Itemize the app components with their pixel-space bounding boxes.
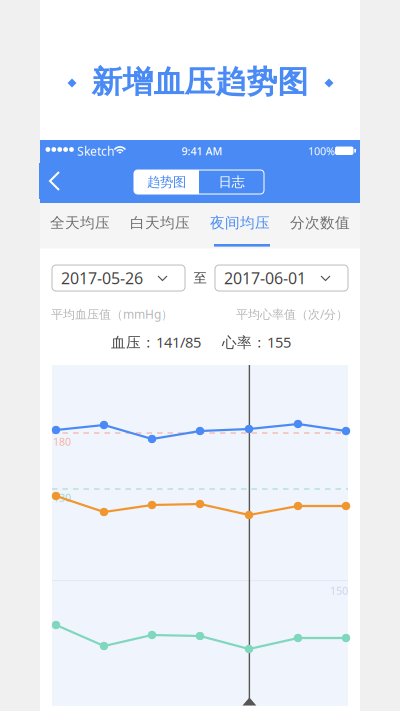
staticText: 180 xyxy=(53,434,71,449)
button[interactable]: 日志 xyxy=(199,170,264,194)
staticText: 平均心率值（次/分） xyxy=(236,306,348,322)
staticText: 新增血压趋势图 xyxy=(91,63,308,101)
staticText: 100% xyxy=(308,144,335,158)
button[interactable]: 2017-06-01 xyxy=(215,265,348,291)
staticText: 全天均压 xyxy=(50,214,110,232)
staticText: 白天均压 xyxy=(130,214,190,232)
staticText: 日志 xyxy=(218,174,244,190)
staticText: 9:41 AM xyxy=(181,144,222,158)
button[interactable]: 夜间均压 xyxy=(200,203,280,248)
staticText: Sketch xyxy=(77,143,114,159)
staticText: 血压：141/85 xyxy=(111,332,201,352)
staticText: 趋势图 xyxy=(147,174,186,190)
staticText: 130 xyxy=(53,490,71,505)
button[interactable]: 分次数值 xyxy=(280,203,360,248)
staticText: 分次数值 xyxy=(290,214,350,232)
staticText: 2017-06-01 xyxy=(224,267,306,289)
staticText: 夜间均压 xyxy=(210,214,270,232)
button[interactable]: 2017-05-26 xyxy=(52,265,185,291)
button[interactable]: 全天均压 xyxy=(40,203,120,248)
button[interactable]: 趋势图 xyxy=(134,170,199,194)
staticText: 2017-05-26 xyxy=(61,267,143,289)
staticText: 至 xyxy=(193,270,206,286)
staticText: 150 xyxy=(330,583,348,598)
staticText: 平均血压值（mmHg） xyxy=(51,306,173,322)
button[interactable]: Back xyxy=(39,163,73,199)
staticText: 心率：155 xyxy=(222,332,291,352)
button[interactable]: 白天均压 xyxy=(120,203,200,248)
